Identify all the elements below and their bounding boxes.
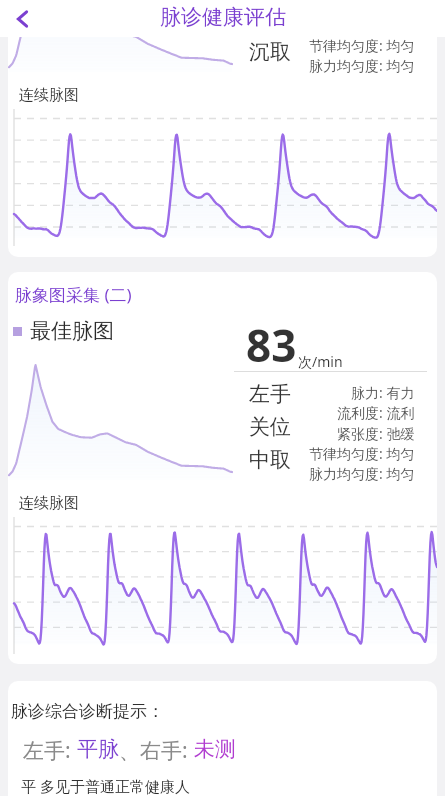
staticText: 流利度: 流利 — [337, 403, 415, 422]
button[interactable]: 脉诊综合诊断提示： — [8, 681, 437, 796]
staticText: 沉取 — [249, 39, 291, 65]
button[interactable]: Back — [0, 0, 46, 37]
staticText: 脉力: 有力 — [351, 383, 415, 402]
staticText: 关位 — [249, 414, 291, 440]
staticText: 脉力均匀度: 均匀 — [309, 464, 415, 483]
staticText: 脉象图采集 (二) — [15, 283, 132, 306]
staticText: 中取 — [249, 447, 291, 473]
staticText: 83 — [246, 315, 297, 375]
staticText: 、右手: — [119, 736, 194, 765]
staticText: 平 多见于普通正常健康人 — [21, 776, 190, 796]
button[interactable]: 脉象图采集 (二) — [8, 272, 437, 664]
staticText: 最佳脉图 — [30, 318, 114, 344]
staticText: 未测 — [194, 736, 236, 762]
staticText: 左手: — [23, 736, 77, 765]
staticText: 连续脉图 — [19, 86, 79, 105]
staticText: 节律均匀度: 均匀 — [309, 37, 415, 55]
staticText: 紧张度: 弛缓 — [337, 424, 415, 443]
staticText: 平脉 — [77, 736, 119, 762]
staticText: 节律均匀度: 均匀 — [309, 444, 415, 463]
button[interactable]: 脉象图采集 (一) — [8, 37, 437, 257]
staticText: 脉诊健康评估 — [160, 4, 286, 30]
staticText: 脉力均匀度: 均匀 — [309, 56, 415, 75]
staticText: 次/min — [298, 352, 343, 371]
staticText: 脉诊综合诊断提示： — [11, 701, 164, 722]
staticText: 连续脉图 — [19, 494, 79, 513]
staticText: 左手 — [249, 381, 291, 407]
